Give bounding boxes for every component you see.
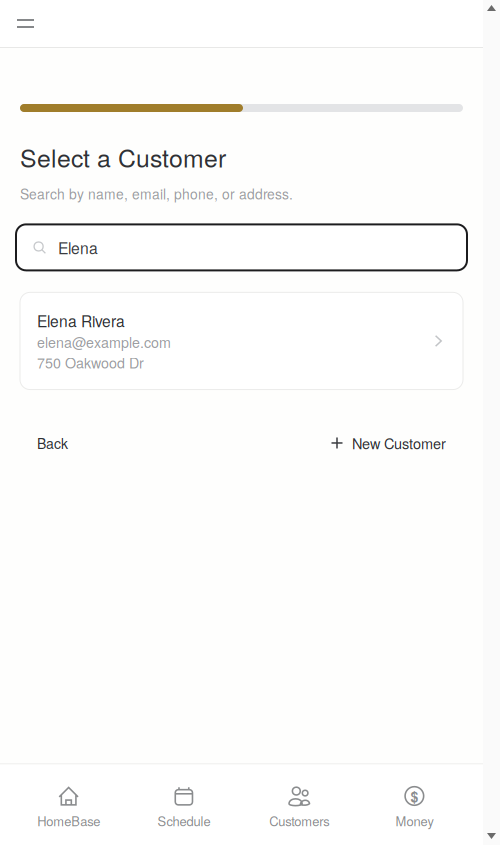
button[interactable]: Customers	[241, 764, 357, 845]
staticText: New Customer	[352, 433, 446, 453]
button[interactable]: Schedule	[126, 764, 241, 845]
staticText: Money	[395, 811, 433, 830]
button[interactable]: HomeBase	[11, 764, 126, 845]
staticText: 750 Oakwood Dr	[37, 352, 144, 372]
staticText: Schedule	[157, 811, 210, 830]
button[interactable]: Back	[20, 433, 85, 453]
staticText: Select a Customer	[20, 139, 226, 174]
staticText: $	[410, 786, 418, 806]
staticText: Back	[37, 433, 68, 453]
staticText: Elena	[58, 236, 98, 259]
button[interactable]: Elena Rivera	[20, 292, 463, 390]
staticText: HomeBase	[37, 811, 100, 830]
button[interactable]: New Customer	[314, 433, 463, 453]
button[interactable]: Menu	[0, 6, 46, 41]
staticText: elena@example.com	[37, 332, 171, 352]
staticText: Search by name, email, phone, or address…	[20, 183, 293, 203]
button[interactable]: $	[357, 764, 472, 845]
staticText: Customers	[269, 811, 329, 830]
staticText: Elena Rivera	[37, 309, 125, 332]
